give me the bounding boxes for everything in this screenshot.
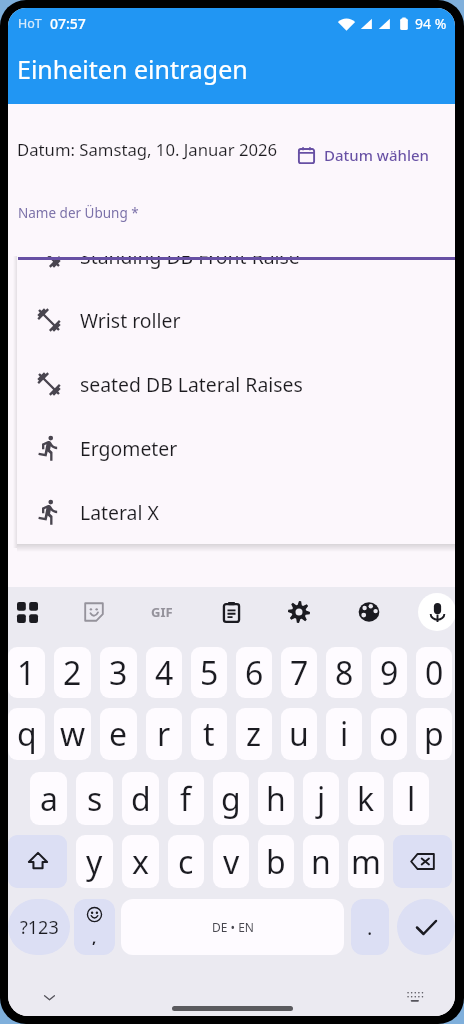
staticText: m	[351, 840, 381, 884]
button[interactable]: r	[146, 708, 182, 760]
staticText: c	[178, 840, 194, 884]
staticText: 2	[63, 651, 82, 695]
button[interactable]: 7	[281, 647, 317, 698]
button[interactable]: p	[416, 708, 452, 760]
staticText: Ergometer	[80, 435, 178, 461]
button[interactable]: ?123	[8, 899, 70, 955]
button[interactable]: i	[326, 708, 362, 760]
staticText: b	[266, 840, 286, 884]
staticText: d	[131, 777, 151, 821]
staticText: h	[266, 777, 286, 821]
staticText: Standing DB Front Raise	[80, 256, 300, 269]
staticText: .	[367, 914, 373, 941]
button[interactable]: 8	[326, 647, 362, 698]
staticText: 5	[200, 651, 219, 695]
button[interactable]: 5	[191, 647, 227, 698]
button[interactable]: t	[191, 708, 227, 760]
button[interactable]: v	[213, 835, 249, 888]
staticText: 0	[425, 651, 444, 695]
button[interactable]: m	[348, 835, 384, 888]
staticText: 1	[17, 651, 36, 695]
staticText: HoT	[18, 15, 42, 32]
button[interactable]: Backspace	[393, 835, 452, 888]
button[interactable]: f	[168, 772, 204, 825]
button[interactable]: Wrist roller	[17, 288, 455, 352]
button[interactable]: c	[168, 835, 204, 888]
button[interactable]: e	[100, 708, 137, 760]
staticText: 3	[109, 651, 128, 695]
button[interactable]: 3	[100, 647, 137, 698]
button[interactable]: Shift	[8, 835, 67, 888]
button[interactable]: d	[122, 772, 159, 825]
button[interactable]: g	[213, 772, 249, 825]
staticText: s	[87, 777, 103, 821]
button[interactable]: 1	[8, 647, 45, 698]
button[interactable]: Change keyboard	[397, 979, 433, 1015]
staticText: ?123	[20, 915, 59, 940]
staticText: e	[109, 712, 128, 756]
button[interactable]: Standing DB Front Raise	[17, 256, 455, 288]
staticText: Einheiten eintragen	[17, 52, 248, 86]
staticText: seated DB Lateral Raises	[80, 371, 303, 397]
button[interactable]: u	[281, 708, 317, 760]
button[interactable]: 0	[416, 647, 452, 698]
staticText: 94 %	[415, 14, 447, 33]
button[interactable]: l	[393, 772, 429, 825]
button[interactable]: q	[8, 708, 45, 760]
button[interactable]: Clipboard	[211, 592, 251, 632]
button[interactable]: Voice input	[418, 593, 455, 631]
button[interactable]: GIF	[142, 592, 182, 632]
button[interactable]: 9	[371, 647, 407, 698]
staticText: 6	[245, 651, 264, 695]
button[interactable]: x	[122, 835, 159, 888]
button[interactable]: seated DB Lateral Raises	[17, 352, 455, 416]
staticText: ,	[92, 927, 97, 947]
button[interactable]: 6	[236, 647, 272, 698]
staticText: g	[221, 777, 241, 821]
button[interactable]: Apps	[8, 592, 47, 632]
button[interactable]: h	[258, 772, 294, 825]
button[interactable]: j	[303, 772, 339, 825]
staticText: u	[289, 712, 309, 756]
button[interactable]: k	[348, 772, 384, 825]
button[interactable]: DE • EN	[121, 899, 344, 955]
button[interactable]: w	[54, 708, 91, 760]
button[interactable]: Themes	[349, 592, 389, 632]
button[interactable]: 4	[146, 647, 182, 698]
staticText: o	[379, 712, 399, 756]
button[interactable]: Lateral X	[17, 480, 455, 544]
staticText: v	[223, 840, 240, 884]
staticText: j	[317, 777, 326, 821]
button[interactable]: .	[351, 899, 389, 955]
staticText: 9	[380, 651, 399, 695]
button[interactable]: z	[236, 708, 272, 760]
staticText: p	[424, 712, 444, 756]
button[interactable]: o	[371, 708, 407, 760]
staticText: 07:57	[50, 14, 86, 33]
staticText: GIF	[151, 603, 173, 621]
button[interactable]: s	[76, 772, 113, 825]
button[interactable]: Settings	[279, 592, 319, 632]
button[interactable]: Ergometer	[17, 416, 455, 480]
staticText: r	[157, 712, 171, 756]
button[interactable]: Emoji and comma	[74, 899, 115, 955]
staticText: a	[40, 777, 58, 821]
button[interactable]: b	[258, 835, 294, 888]
button[interactable]: a	[30, 772, 67, 825]
staticText: l	[407, 777, 416, 821]
button[interactable]: Hide keyboard	[31, 979, 67, 1015]
button[interactable]: Enter	[397, 899, 455, 955]
staticText: z	[246, 712, 262, 756]
staticText: Datum: Samstag, 10. Januar 2026	[17, 138, 278, 161]
button[interactable]: y	[76, 835, 113, 888]
button[interactable]: n	[303, 835, 339, 888]
staticText: w	[60, 712, 86, 756]
button[interactable]: 2	[54, 647, 91, 698]
staticText: Wrist roller	[80, 307, 181, 333]
button[interactable]: Datum wählen	[297, 139, 429, 171]
staticText: t	[203, 712, 215, 756]
button[interactable]: Stickers	[74, 592, 114, 632]
staticText: i	[340, 712, 349, 756]
staticText: DE • EN	[212, 919, 254, 935]
staticText: 4	[155, 651, 174, 695]
